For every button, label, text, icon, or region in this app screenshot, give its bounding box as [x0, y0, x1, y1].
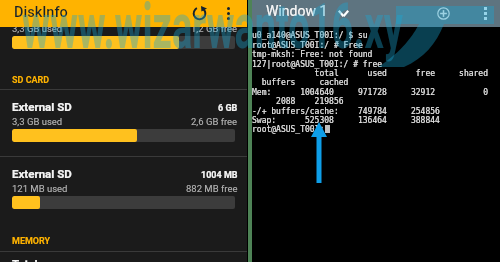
button[interactable]: External SD [0, 157, 247, 223]
staticText: 3,3 GB used [12, 23, 63, 34]
staticText: root@ASUS_T00I: [252, 125, 330, 134]
staticText: MEMORY [12, 236, 51, 247]
staticText: External SD [12, 167, 72, 180]
staticText: tmp-mksh: Free: not found [252, 50, 373, 59]
staticText: Total [12, 257, 38, 262]
staticText: 2,6 GB free [191, 116, 238, 127]
staticText: Mem: 1004640 971728 32912 0 [252, 88, 489, 97]
staticText: root@ASUS_T00I:/ # Free [252, 41, 363, 50]
staticText: 2088 219856 [252, 97, 344, 106]
staticText: 6 GB [218, 103, 238, 114]
staticText: buffers cached [252, 78, 349, 87]
staticText: u0_a140@ASUS_T00I:/ $ su [252, 31, 368, 40]
staticText: Window 1 [266, 3, 328, 19]
button[interactable]: External SD [0, 90, 247, 156]
button[interactable]: Choose window [330, 0, 356, 27]
staticText: 1004 MB [201, 170, 238, 181]
staticText: 121 MB used [12, 183, 68, 194]
staticText: 882 MB free [186, 183, 238, 194]
staticText: www.wizarwanto16.xy [22, 0, 403, 64]
button[interactable]: More options [472, 0, 498, 27]
staticText: 1,2 GB free [191, 23, 238, 34]
staticText: -/+ buffers/cache: 749784 254856 [252, 107, 440, 116]
button[interactable]: More options [215, 0, 241, 27]
staticText: SD CARD [12, 75, 50, 86]
staticText: 127|root@ASUS_T00I:/ # free [252, 60, 383, 69]
staticText: Swap: 525308 136464 388844 [252, 116, 440, 125]
button[interactable]: 3,3 GB used [0, 0, 247, 262]
staticText: total used free shared [252, 69, 489, 78]
staticText: DiskInfo [14, 4, 68, 21]
staticText: 3,3 GB used [12, 116, 63, 127]
button[interactable]: New window [430, 0, 456, 27]
staticText: External SD [12, 100, 72, 113]
button[interactable]: Refresh [186, 0, 212, 27]
